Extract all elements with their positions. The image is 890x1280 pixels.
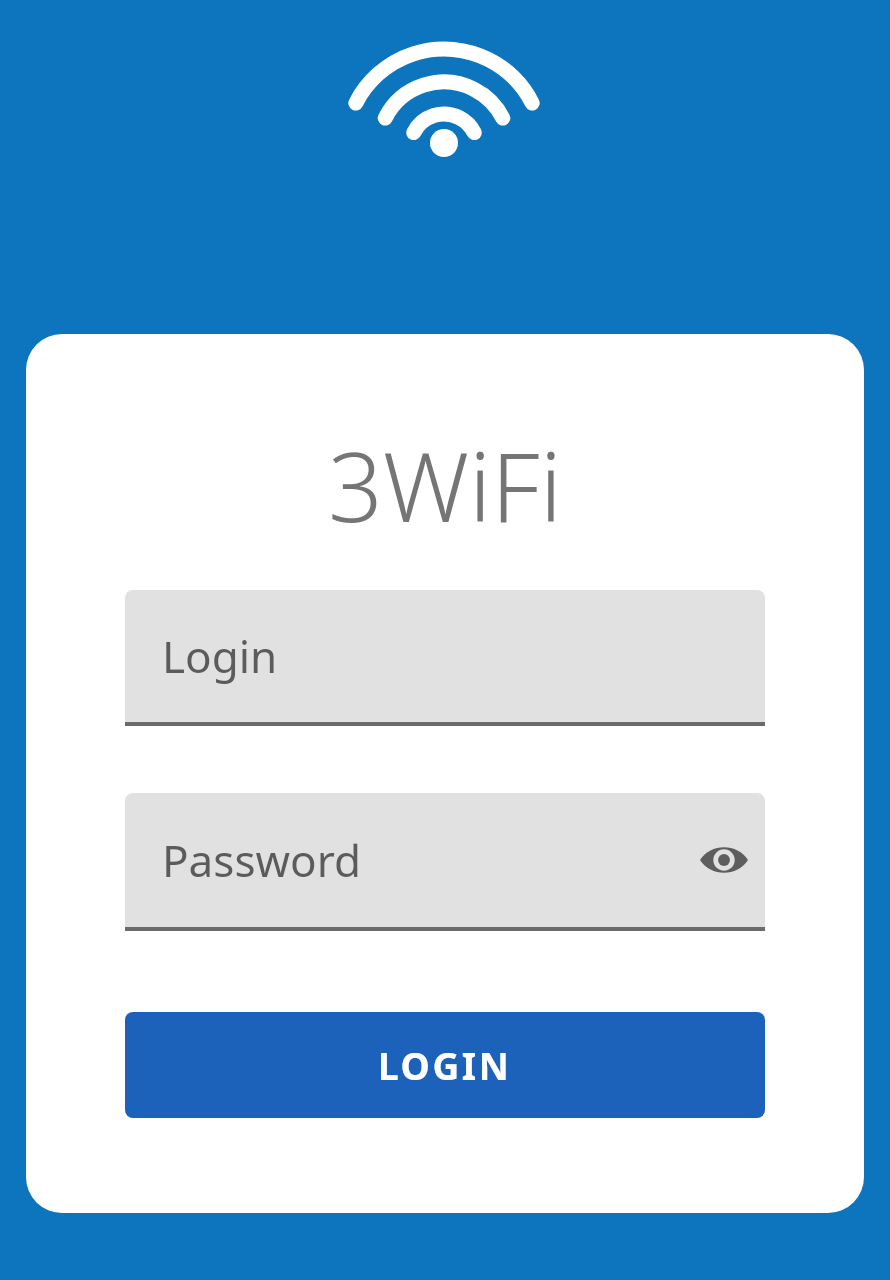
button[interactable]: Show password [688,824,760,896]
button[interactable]: LOGIN [125,1012,765,1118]
button[interactable]: Login [125,590,765,726]
button[interactable]: Password [125,793,765,931]
staticText: Password [162,830,362,890]
staticText: Login [162,626,278,686]
staticText: LOGIN [378,1040,512,1090]
staticText: 3WiFi [26,419,864,550]
